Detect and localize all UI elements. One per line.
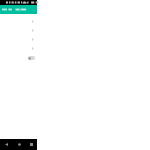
button[interactable]: Open item [0, 35, 37, 44]
button[interactable] [0, 5, 37, 14]
button[interactable]: Recent apps [25, 139, 37, 150]
button[interactable]: Home [13, 139, 25, 150]
button[interactable]: Open item [0, 44, 37, 53]
other: Open item [32, 29, 34, 32]
other: Open item [32, 20, 34, 23]
other: Toggle setting [28, 56, 35, 60]
button[interactable]: Open item [0, 26, 37, 35]
other: Open item [32, 47, 34, 50]
button[interactable]: Open item [0, 17, 37, 26]
other: Open item [32, 38, 34, 41]
button[interactable]: Toggle setting [0, 53, 37, 62]
button[interactable]: Back [0, 139, 13, 150]
